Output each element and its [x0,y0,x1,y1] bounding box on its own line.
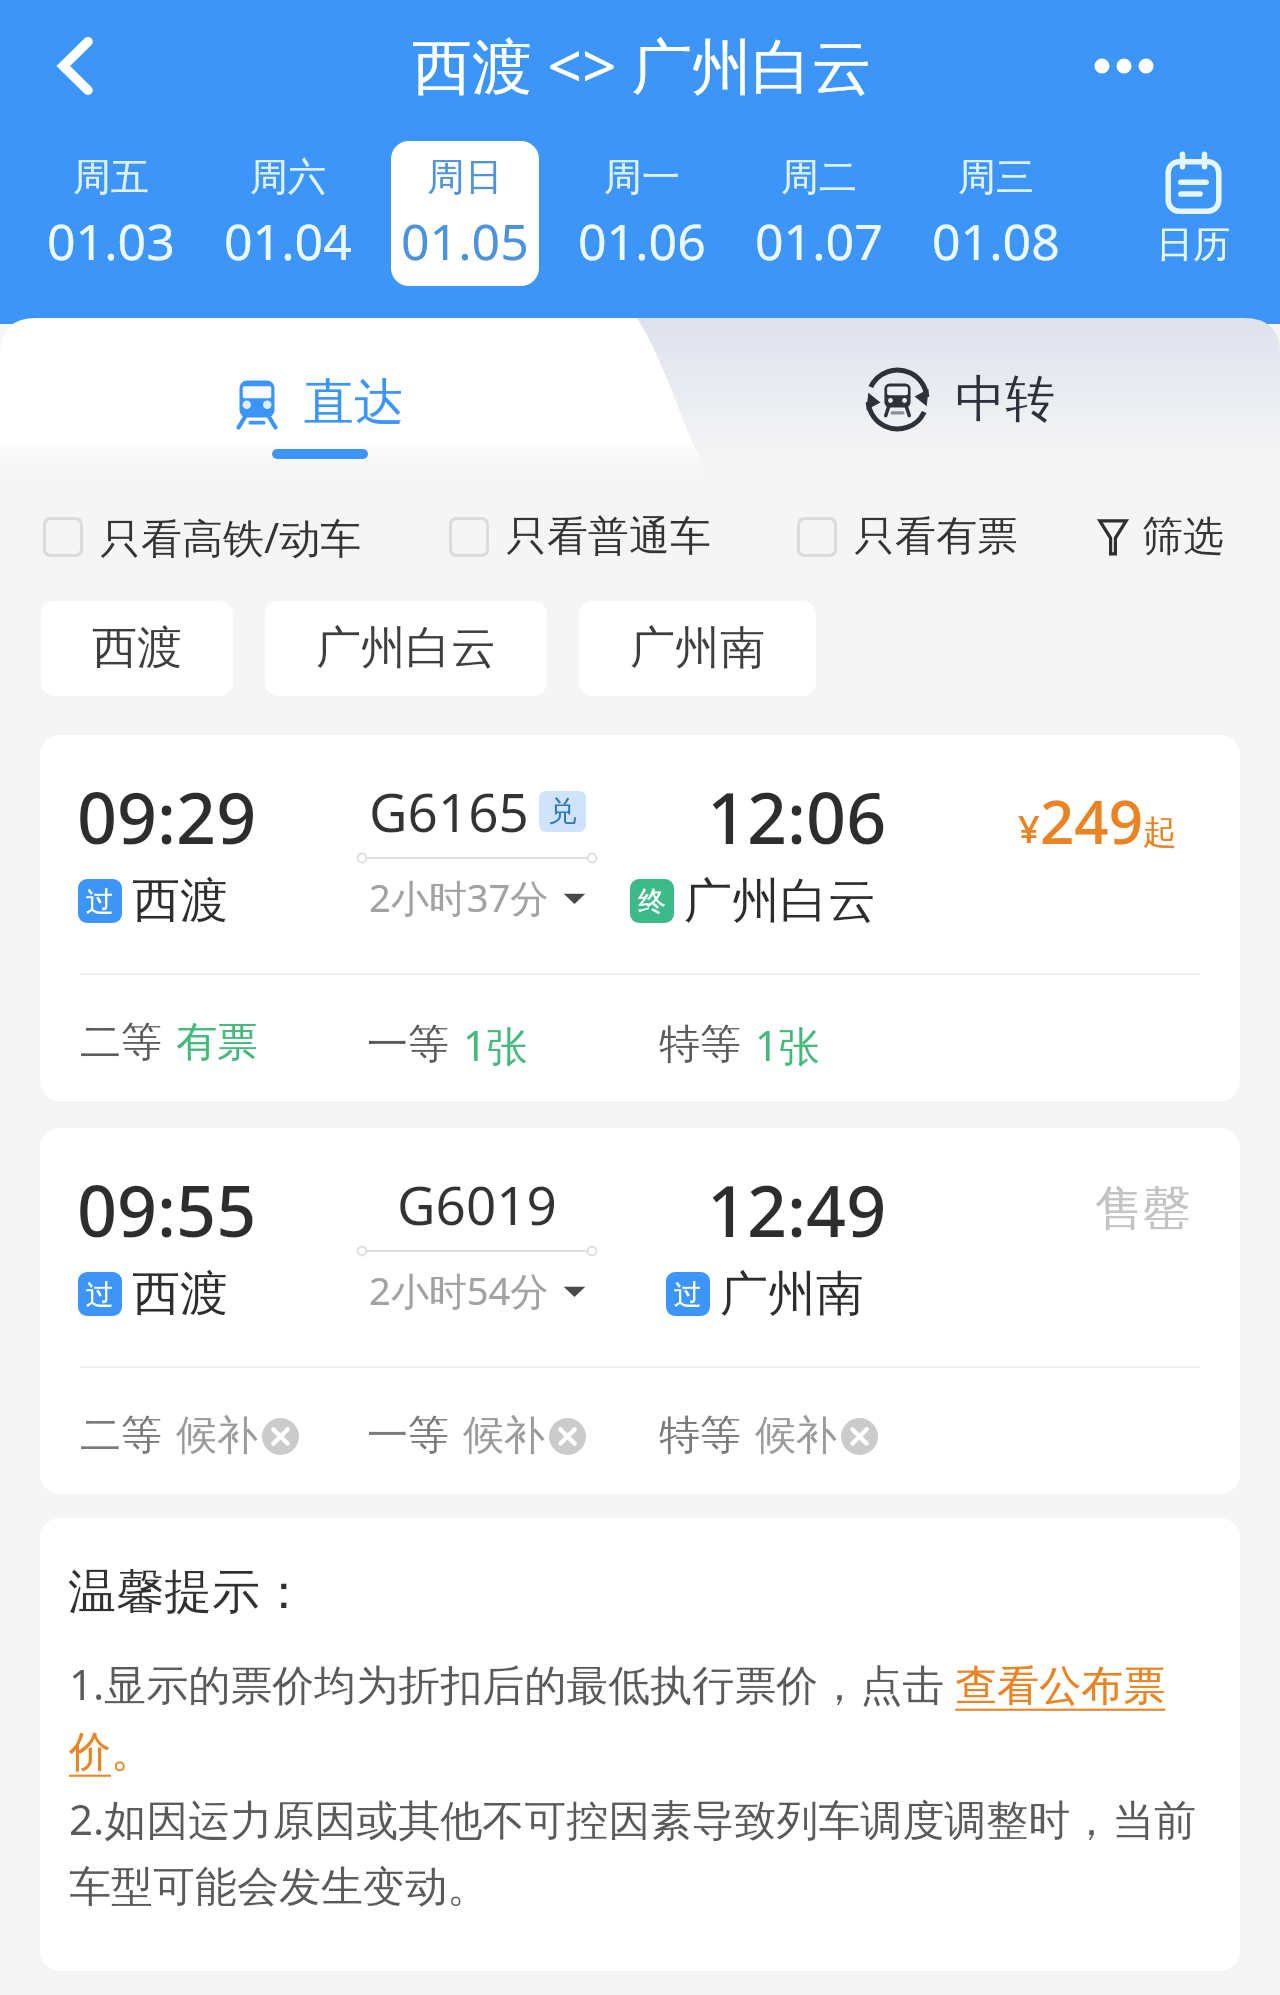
staticText: 1张 [463,1017,528,1073]
staticText: 周二 [781,153,857,201]
staticText: 01.05 [401,207,529,275]
button[interactable]: 广州南 [579,601,816,696]
button[interactable]: 只看有票 [797,511,1018,563]
button[interactable]: 中转 [625,318,1280,476]
staticText: G6019 [397,1168,557,1240]
button[interactable]: 09:55 [40,1128,1240,1494]
button[interactable]: 广州白云 [265,601,547,696]
staticText: 广州南 [720,1264,864,1324]
button[interactable]: 查看公布票价 [948,1658,1168,1718]
button[interactable]: 二等 [80,1017,258,1069]
button[interactable]: 二等 [80,1410,299,1462]
button[interactable]: 周六 [214,141,362,286]
button[interactable]: 西渡 [41,601,233,696]
staticText: 温馨提示： [68,1562,308,1622]
staticText: 只看高铁/动车 [100,509,362,565]
button[interactable]: 一等 [367,1017,528,1073]
staticText: 西渡 [92,620,182,677]
staticText: 1张 [755,1017,820,1073]
staticText: 特等 [659,1019,741,1071]
staticText: 12:49 [707,1162,887,1257]
staticText: 终 [638,884,666,919]
staticText: 12:06 [707,769,887,864]
staticText: 01.06 [578,207,706,275]
staticText: 只看有票 [854,511,1018,563]
staticText: 西渡 [132,1264,228,1324]
button[interactable]: Calendar [1118,138,1268,283]
staticText: 周一 [604,153,680,201]
staticText: 09:55 [77,1162,257,1257]
staticText: 2小时54分 [369,1264,549,1316]
staticText: 2小时37分 [369,871,549,923]
staticText: 候补 [463,1410,545,1462]
button[interactable]: 周二 [745,141,893,286]
staticText: 二等 [80,1017,162,1069]
staticText: 候补 [755,1410,837,1462]
staticText: 候补 [176,1410,258,1462]
button[interactable]: 只看高铁/动车 [43,509,362,565]
staticText: 01.03 [47,207,175,275]
button[interactable]: Back [14,6,134,126]
button[interactable]: 周三 [922,141,1070,286]
staticText: 二等 [80,1410,162,1462]
button[interactable]: 2小时37分 [369,871,586,923]
staticText: 广州白云 [316,620,496,677]
staticText: 日历 [1156,221,1230,268]
staticText: 01.07 [755,207,883,275]
button[interactable]: 筛选 [1098,511,1224,563]
button[interactable]: 特等 [659,1410,878,1462]
staticText: ¥ [1018,802,1040,854]
button[interactable]: 周日 [391,141,539,286]
staticText: 特等 [659,1410,741,1462]
button[interactable]: 周五 [37,141,185,286]
staticText: 筛选 [1142,511,1224,563]
button[interactable]: More options [1064,6,1184,126]
staticText: G6165 [369,775,529,847]
staticText: 09:29 [77,769,257,864]
staticText: 过 [674,1277,702,1312]
staticText: 过 [86,884,114,919]
staticText: 过 [86,1277,114,1312]
staticText: 周六 [250,153,326,201]
button[interactable]: 09:29 [40,735,1240,1101]
staticText: 广州白云 [684,871,876,931]
button[interactable]: 查看公布票价 [69,1724,181,1784]
button[interactable]: 周一 [568,141,716,286]
staticText: 西渡 [132,871,228,931]
staticText: 一等 [367,1019,449,1071]
staticText: 周日 [427,153,503,201]
staticText: 直达 [304,371,404,434]
staticText: 周三 [958,153,1034,201]
staticText: 起 [1143,811,1177,854]
staticText: 中转 [955,368,1055,431]
button[interactable]: 特等 [659,1017,820,1073]
staticText: 广州南 [630,620,765,677]
button[interactable]: 2小时54分 [369,1264,586,1316]
button[interactable]: 只看普通车 [449,511,711,563]
staticText: 兑 [548,793,577,830]
staticText: 一等 [367,1410,449,1462]
button[interactable]: 直达 [5,318,630,476]
staticText: 249 [1040,780,1143,862]
staticText: 只看普通车 [506,511,711,563]
staticText: 西渡 <> 广州白云 [412,24,872,106]
staticText: 1.显示的票价均为折扣后的最低执行票价，点击 查看公布票价。 2.如因运力原因或… [69,1655,1204,1914]
button[interactable]: 一等 [367,1410,586,1462]
staticText: 01.04 [224,207,352,275]
staticText: 周五 [73,153,149,201]
staticText: 有票 [176,1017,258,1069]
staticText: 01.08 [932,207,1060,275]
staticText: 售罄 [1095,1179,1191,1239]
